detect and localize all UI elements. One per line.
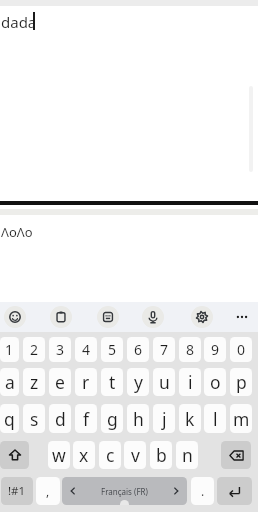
staticText: 0 xyxy=(237,340,246,359)
staticText: 8 xyxy=(186,340,195,359)
staticText: 9 xyxy=(211,340,220,359)
button[interactable]: e xyxy=(49,368,71,396)
staticText: i xyxy=(188,370,193,394)
button[interactable]: Enter xyxy=(217,477,252,505)
staticText: y xyxy=(134,370,143,394)
button[interactable]: Clipboard xyxy=(50,306,72,328)
button[interactable]: p xyxy=(230,368,252,396)
button[interactable]: 2 xyxy=(23,337,45,362)
button[interactable]: Voice input xyxy=(142,306,164,328)
button[interactable]: w xyxy=(48,441,70,469)
button[interactable]: j xyxy=(153,404,175,433)
button[interactable]: x xyxy=(73,441,95,469)
button[interactable]: z xyxy=(23,368,45,396)
button[interactable]: 6 xyxy=(127,337,149,362)
button[interactable]: n xyxy=(176,441,198,469)
staticText: !#1 xyxy=(8,483,26,499)
staticText: z xyxy=(30,370,39,394)
staticText: r xyxy=(82,370,90,394)
staticText: 5 xyxy=(108,340,117,359)
button[interactable]: k xyxy=(179,404,201,433)
staticText: o xyxy=(210,370,221,394)
staticText: ΛoΛo xyxy=(1,223,33,241)
staticText: . xyxy=(201,483,205,499)
staticText: 3 xyxy=(56,340,65,359)
button[interactable]: 5 xyxy=(101,337,123,362)
staticText: q xyxy=(4,407,15,431)
button[interactable]: 0 xyxy=(230,337,252,362)
staticText: v xyxy=(131,443,140,467)
staticText: x xyxy=(79,443,89,467)
staticText: 6 xyxy=(134,340,143,359)
button[interactable]: b xyxy=(150,441,172,469)
button[interactable]: Backspace xyxy=(221,441,251,469)
button[interactable]: , xyxy=(36,477,60,505)
button[interactable]: s xyxy=(23,404,45,433)
staticText: a xyxy=(5,370,15,394)
button[interactable]: 7 xyxy=(153,337,175,362)
staticText: s xyxy=(30,407,39,431)
button[interactable]: a xyxy=(0,368,19,396)
staticText: 2 xyxy=(30,340,39,359)
button[interactable]: q xyxy=(0,404,19,433)
staticText: m xyxy=(233,407,250,431)
button[interactable]: Emoji xyxy=(4,306,26,328)
button[interactable]: d xyxy=(49,404,71,433)
staticText: p xyxy=(236,370,247,394)
staticText: dada xyxy=(1,12,37,32)
button[interactable]: g xyxy=(101,404,123,433)
button[interactable]: r xyxy=(75,368,97,396)
button[interactable]: h xyxy=(127,404,149,433)
button[interactable]: i xyxy=(179,368,201,396)
staticText: 4 xyxy=(82,340,91,359)
staticText: w xyxy=(52,443,66,467)
staticText: b xyxy=(156,443,167,467)
staticText: c xyxy=(106,443,115,467)
button[interactable]: Settings xyxy=(191,306,213,328)
button[interactable]: Stickers xyxy=(97,306,119,328)
button[interactable]: u xyxy=(153,368,175,396)
staticText: u xyxy=(159,370,170,394)
staticText: 1 xyxy=(5,340,14,359)
button[interactable]: Shift xyxy=(0,441,29,469)
button[interactable]: 3 xyxy=(49,337,71,362)
button[interactable]: y xyxy=(127,368,149,396)
button[interactable]: v xyxy=(124,441,146,469)
button[interactable]: 9 xyxy=(204,337,226,362)
staticText: , xyxy=(46,483,50,499)
staticText: k xyxy=(185,407,195,431)
button[interactable]: c xyxy=(99,441,121,469)
button[interactable]: m xyxy=(230,404,252,433)
staticText: j xyxy=(162,407,167,431)
staticText: 7 xyxy=(160,340,169,359)
staticText: e xyxy=(55,370,65,394)
staticText: f xyxy=(83,407,90,431)
button[interactable]: t xyxy=(101,368,123,396)
button[interactable]: f xyxy=(75,404,97,433)
button[interactable]: Space xyxy=(62,477,187,505)
staticText: n xyxy=(182,443,193,467)
button[interactable]: 4 xyxy=(75,337,97,362)
button[interactable]: 1 xyxy=(0,337,19,362)
button[interactable]: . xyxy=(191,477,214,505)
staticText: Français (FR) xyxy=(101,486,148,497)
button[interactable]: o xyxy=(204,368,226,396)
staticText: d xyxy=(55,407,66,431)
button[interactable]: More options xyxy=(231,306,253,328)
button[interactable]: 8 xyxy=(179,337,201,362)
staticText: h xyxy=(133,407,144,431)
staticText: g xyxy=(107,407,118,431)
button[interactable]: l xyxy=(204,404,226,433)
staticText: l xyxy=(213,407,218,431)
button[interactable]: !#1 xyxy=(1,477,33,505)
staticText: t xyxy=(109,370,116,394)
